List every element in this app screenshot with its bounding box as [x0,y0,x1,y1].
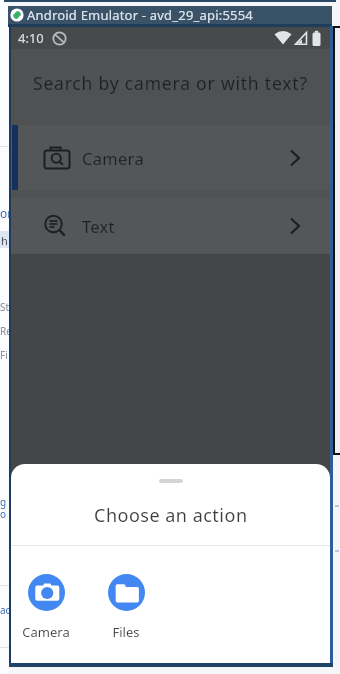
staticText: o [0,507,7,521]
staticText: Files [112,623,140,641]
button[interactable]: Camera [11,125,330,190]
staticText: 4:10 [18,29,44,47]
staticText: g [0,495,7,509]
staticText: Camera [82,147,144,169]
staticText: Re [0,324,12,338]
button[interactable]: Camera [11,574,86,641]
staticText: Fi [0,348,8,362]
staticText: Camera [22,623,70,641]
button[interactable]: Text [11,198,330,254]
staticText: Choose an action [94,503,248,528]
staticText: or [0,205,13,221]
staticText: ac [0,603,11,617]
staticText: Android Emulator - avd_29_api:5554 [27,6,253,24]
staticText: Search by camera or with text? [33,71,308,95]
staticText: Text [82,215,115,237]
button[interactable]: Files [86,574,166,641]
staticText: St [0,300,10,314]
staticText: h [1,233,8,248]
